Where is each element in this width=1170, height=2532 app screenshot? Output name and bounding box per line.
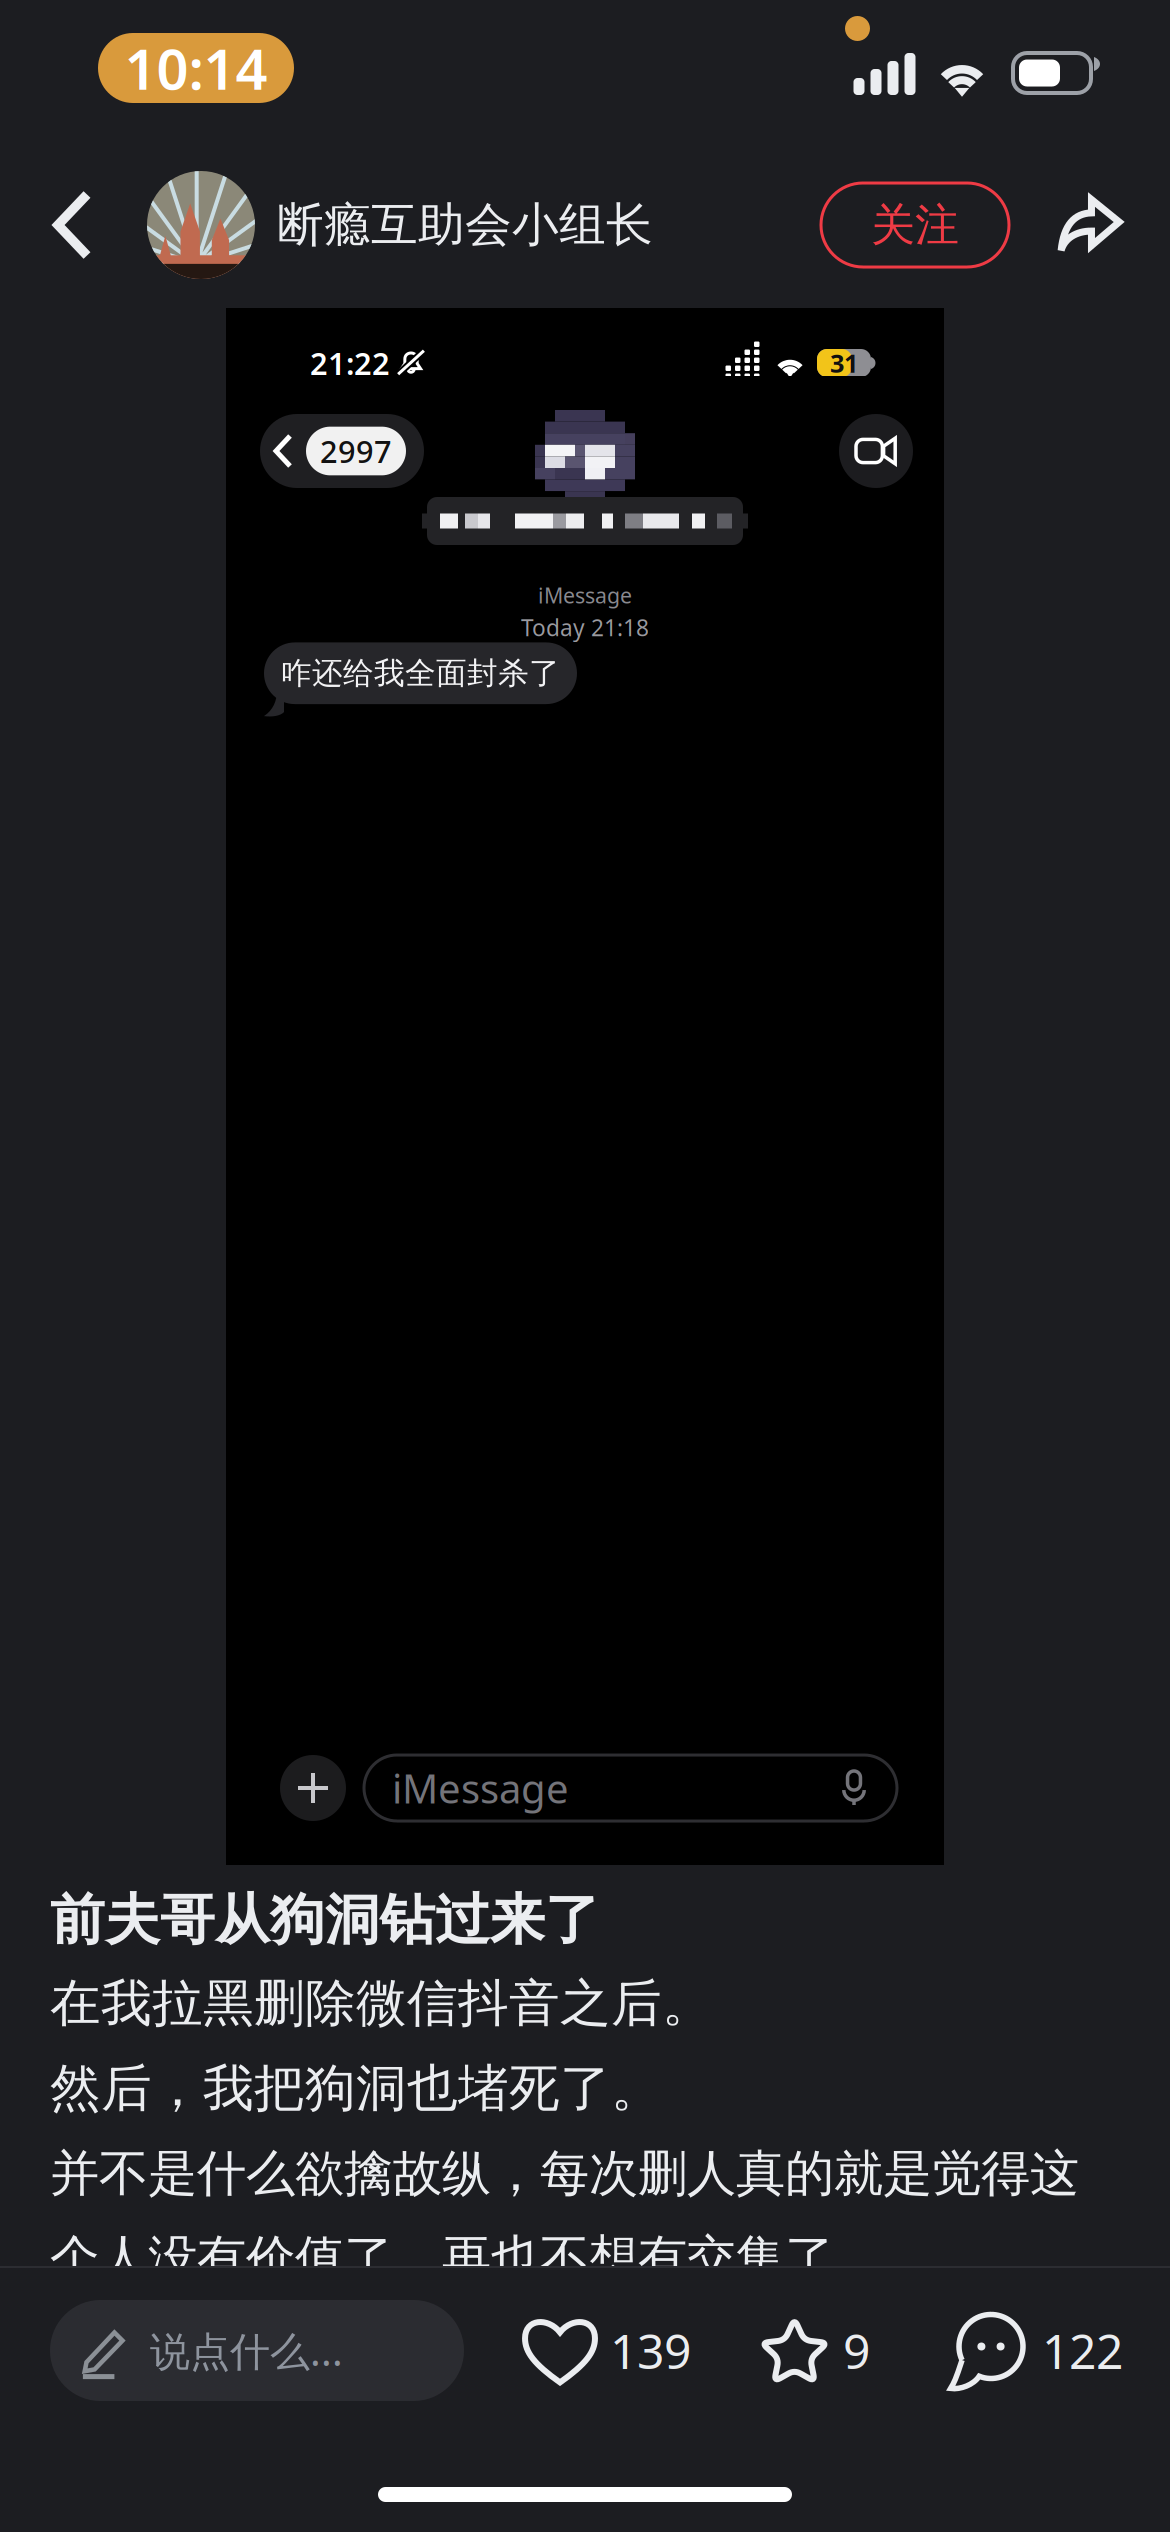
button[interactable]: 说点什么... bbox=[50, 2300, 464, 2401]
staticText: 并不是什么欲擒故纵，每次删人真的就是觉得这 bbox=[50, 2143, 1079, 2204]
staticText: 139 bbox=[610, 2319, 691, 2382]
staticText: iMessage bbox=[538, 581, 632, 609]
button[interactable]: 9 bbox=[756, 2300, 870, 2401]
staticText: iMessage bbox=[392, 1761, 569, 1814]
staticText: Today 21:18 bbox=[521, 612, 649, 642]
button[interactable]: 122 bbox=[951, 2300, 1123, 2401]
staticText: 10:14 bbox=[124, 31, 267, 105]
staticText: 断瘾互助会小组长 bbox=[277, 196, 653, 254]
staticText: 122 bbox=[1042, 2319, 1123, 2382]
staticText: 说点什么... bbox=[150, 2324, 343, 2377]
button[interactable]: 返回 bbox=[0, 162, 147, 288]
staticText: 21:22 bbox=[310, 343, 390, 383]
button[interactable]: 关注 bbox=[821, 183, 1009, 267]
staticText: 2997 bbox=[320, 431, 392, 471]
staticText: 关注 bbox=[871, 198, 959, 252]
button[interactable]: 139 bbox=[522, 2300, 691, 2401]
staticText: 31 bbox=[830, 346, 858, 380]
staticText: 前夫哥从狗洞钻过来了 bbox=[50, 1886, 600, 1953]
staticText: 咋还给我全面封杀了 bbox=[281, 654, 560, 692]
button[interactable]: 断瘾互助会小组长 bbox=[147, 162, 653, 288]
staticText: 9 bbox=[843, 2319, 870, 2382]
staticText: 在我拉黑删除微信抖音之后。 bbox=[50, 1972, 713, 2035]
staticText: 然后，我把狗洞也堵死了。 bbox=[50, 2057, 662, 2120]
button[interactable]: 分享 bbox=[1009, 162, 1170, 288]
staticText: 个人没有价值了，再也不想有交集了 bbox=[50, 2228, 834, 2289]
